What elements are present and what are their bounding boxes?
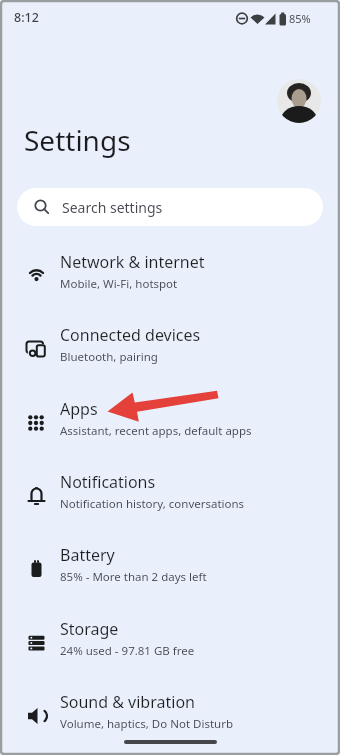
button[interactable]: Search settings <box>17 188 323 226</box>
button[interactable]: Apps <box>0 382 340 455</box>
button[interactable]: Notifications <box>0 455 340 528</box>
staticText: 85% - More than 2 days left <box>60 569 207 585</box>
staticText: Battery <box>60 544 115 566</box>
staticText: Storage <box>60 618 119 640</box>
staticText: Mobile, Wi-Fi, hotspot <box>60 276 178 292</box>
staticText: Bluetooth, pairing <box>60 349 158 365</box>
button[interactable]: Connected devices <box>0 308 340 381</box>
button[interactable]: Network & internet <box>0 235 340 308</box>
button[interactable] <box>277 79 321 123</box>
button[interactable]: Sound & vibration <box>0 675 340 748</box>
staticText: Sound & vibration <box>60 691 195 713</box>
staticText: Assistant, recent apps, default apps <box>60 423 252 439</box>
staticText: Apps <box>60 398 98 420</box>
staticText: Notification history, conversations <box>60 496 245 512</box>
button[interactable]: Storage <box>0 602 340 675</box>
staticText: Network & internet <box>60 251 205 273</box>
staticText: 8:12 <box>14 9 39 26</box>
staticText: Volume, haptics, Do Not Disturb <box>60 716 233 732</box>
staticText: Settings <box>24 121 131 159</box>
staticText: Notifications <box>60 471 156 493</box>
staticText: Connected devices <box>60 324 201 346</box>
staticText: 85% <box>289 11 311 26</box>
staticText: 24% used - 97.81 GB free <box>60 643 195 659</box>
button[interactable]: Battery <box>0 528 340 601</box>
staticText: Search settings <box>62 198 163 217</box>
